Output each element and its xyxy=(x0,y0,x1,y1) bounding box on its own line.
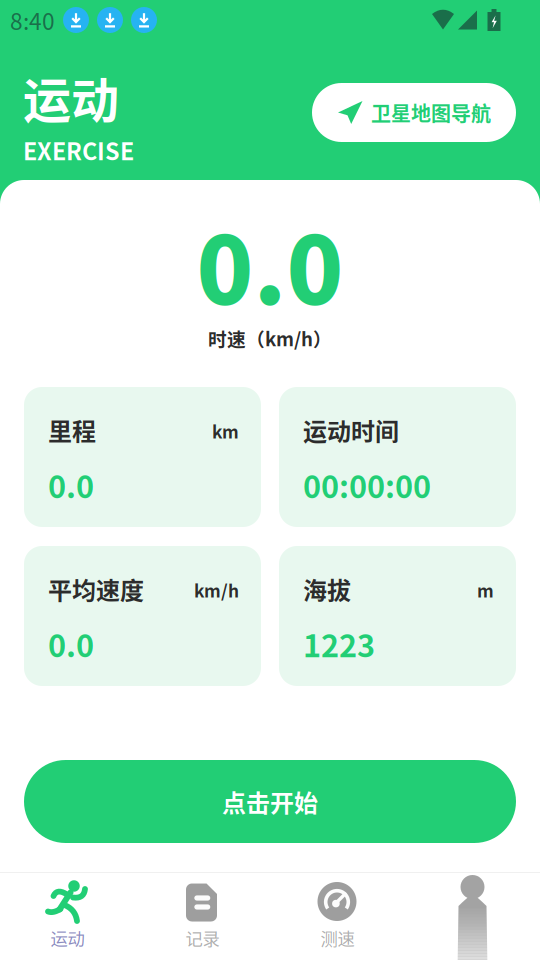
button[interactable]: 我的 xyxy=(405,873,540,960)
button[interactable]: 点击开始 xyxy=(24,760,516,843)
staticText: 运动 xyxy=(23,62,119,132)
staticText: km xyxy=(212,418,239,444)
staticText: 点击开始 xyxy=(222,784,318,819)
button[interactable]: 卫星地图导航 xyxy=(312,83,516,142)
staticText: 00:00:00 xyxy=(303,463,431,507)
staticText: 运动时间 xyxy=(303,413,399,447)
button[interactable]: 运动 xyxy=(0,873,135,960)
staticText: 测速 xyxy=(320,925,354,951)
staticText: 海拔 xyxy=(303,572,351,606)
staticText: 平均速度 xyxy=(48,572,144,606)
staticText: 0.0 xyxy=(48,463,94,507)
staticText: m xyxy=(477,577,494,603)
staticText: 卫星地图导航 xyxy=(371,98,491,127)
staticText: 0.0 xyxy=(48,622,94,666)
staticText: 时速（km/h） xyxy=(208,324,332,351)
staticText: 1223 xyxy=(303,622,375,666)
staticText: EXERCISE xyxy=(23,133,134,167)
staticText: 0.0 xyxy=(196,196,343,331)
staticText: 运动 xyxy=(50,925,84,951)
button[interactable]: 记录 xyxy=(135,873,270,960)
staticText: 里程 xyxy=(48,413,96,447)
staticText: km/h xyxy=(194,577,239,603)
button[interactable]: 测速 xyxy=(270,873,405,960)
staticText: 记录 xyxy=(185,925,219,951)
staticText: 8:40 xyxy=(10,4,55,36)
